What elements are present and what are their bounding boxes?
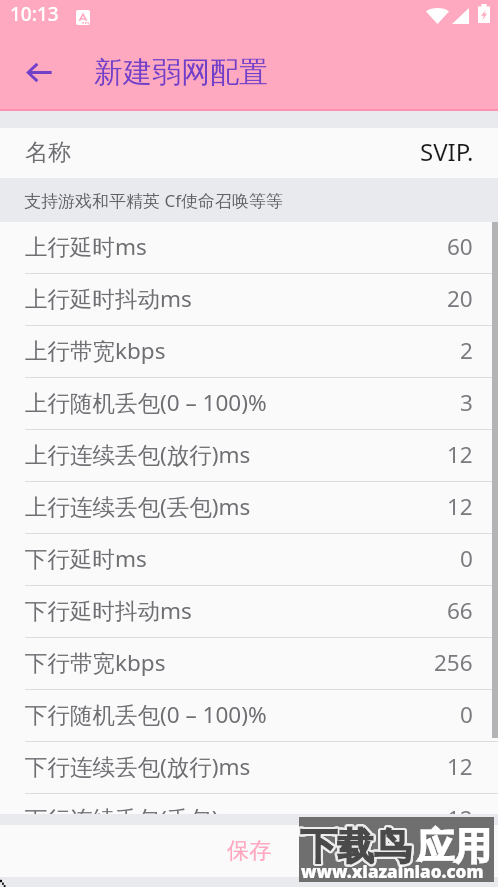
staticText: 下行带宽kbps (25, 647, 166, 678)
staticText: 256 (434, 647, 473, 678)
staticText: 上行连续丢包(放行)ms (25, 439, 251, 470)
staticText: 20 (447, 283, 473, 314)
button[interactable]: 保存 (0, 825, 498, 877)
button[interactable]: 下行连续丢包(丢包)ms (0, 794, 498, 846)
staticText: 新建弱网配置 (94, 54, 268, 91)
staticText: 12 (447, 751, 473, 782)
staticText: 下载鸟 (299, 825, 410, 872)
staticText: 下行连续丢包(丢包)ms (25, 803, 251, 834)
staticText: SVIP. (420, 135, 474, 168)
staticText: 下行延时抖动ms (25, 595, 192, 626)
button[interactable]: 上行随机丢包(0 – 100)% (0, 378, 498, 430)
button[interactable]: 上行延时ms (0, 222, 498, 274)
staticText: www.xiazainiao.com (301, 860, 484, 882)
staticText: 下载鸟 (301, 824, 412, 871)
staticText: 下载鸟 (299, 824, 410, 871)
staticText: 下载鸟 (299, 823, 409, 870)
staticText: 下载鸟 (302, 822, 413, 869)
staticText: 下载鸟 (299, 822, 409, 869)
staticText: 上行带宽kbps (25, 335, 166, 366)
staticText: 应用 (417, 823, 491, 870)
button[interactable]: 下行带宽kbps (0, 638, 498, 690)
staticText: 12 (447, 803, 473, 834)
staticText: 上行随机丢包(0 – 100)% (25, 387, 267, 418)
staticText: 下载鸟 (299, 823, 410, 870)
staticText: 下载鸟 (300, 823, 411, 870)
staticText: 12 (447, 439, 473, 470)
button[interactable]: 下行连续丢包(放行)ms (0, 742, 498, 794)
button[interactable]: 上行延时抖动ms (0, 274, 498, 326)
staticText: 12 (447, 491, 473, 522)
button[interactable]: 下行延时抖动ms (0, 586, 498, 638)
staticText: 66 (447, 595, 473, 626)
staticText: 下载鸟 (300, 821, 411, 868)
staticText: 下载鸟 (301, 825, 412, 872)
staticText: 下载鸟 (300, 825, 411, 872)
staticText: 保存 (227, 837, 271, 865)
button[interactable]: 上行连续丢包(丢包)ms (0, 482, 498, 534)
button[interactable]: 上行带宽kbps (0, 326, 498, 378)
staticText: 0 (460, 699, 473, 730)
staticText: 下载鸟 (301, 821, 412, 868)
staticText: 下载鸟 (300, 824, 411, 871)
button[interactable]: Back (17, 50, 61, 94)
staticText: 上行延时抖动ms (25, 283, 192, 314)
staticText: 支持游戏和平精英 Cf使命召唤等等 (24, 189, 284, 212)
button[interactable]: 下行随机丢包(0 – 100)% (0, 690, 498, 742)
staticText: 2 (460, 335, 473, 366)
button[interactable]: 名称 (0, 128, 498, 178)
staticText: 下载鸟 (302, 824, 413, 871)
staticText: 下载鸟 (299, 824, 409, 871)
staticText: 上行连续丢包(丢包)ms (25, 491, 251, 522)
staticText: 下载鸟 (301, 823, 412, 870)
staticText: 上行延时ms (25, 231, 147, 262)
staticText: 下载鸟 (302, 823, 413, 870)
staticText: 下行延时ms (25, 543, 147, 574)
staticText: 3 (460, 387, 473, 418)
staticText: 下行随机丢包(0 – 100)% (25, 699, 267, 730)
staticText: 下载鸟 (299, 821, 410, 868)
staticText: 下载鸟 (301, 822, 412, 869)
staticText: 0 (460, 543, 473, 574)
staticText: 下载鸟 (300, 822, 411, 869)
staticText: 下载鸟 (299, 822, 410, 869)
staticText: 名称 (25, 138, 71, 167)
staticText: 60 (447, 231, 473, 262)
button[interactable]: 上行连续丢包(放行)ms (0, 430, 498, 482)
staticText: 10:13 (10, 1, 59, 27)
staticText: 下行连续丢包(放行)ms (25, 751, 251, 782)
button[interactable]: 下行延时ms (0, 534, 498, 586)
